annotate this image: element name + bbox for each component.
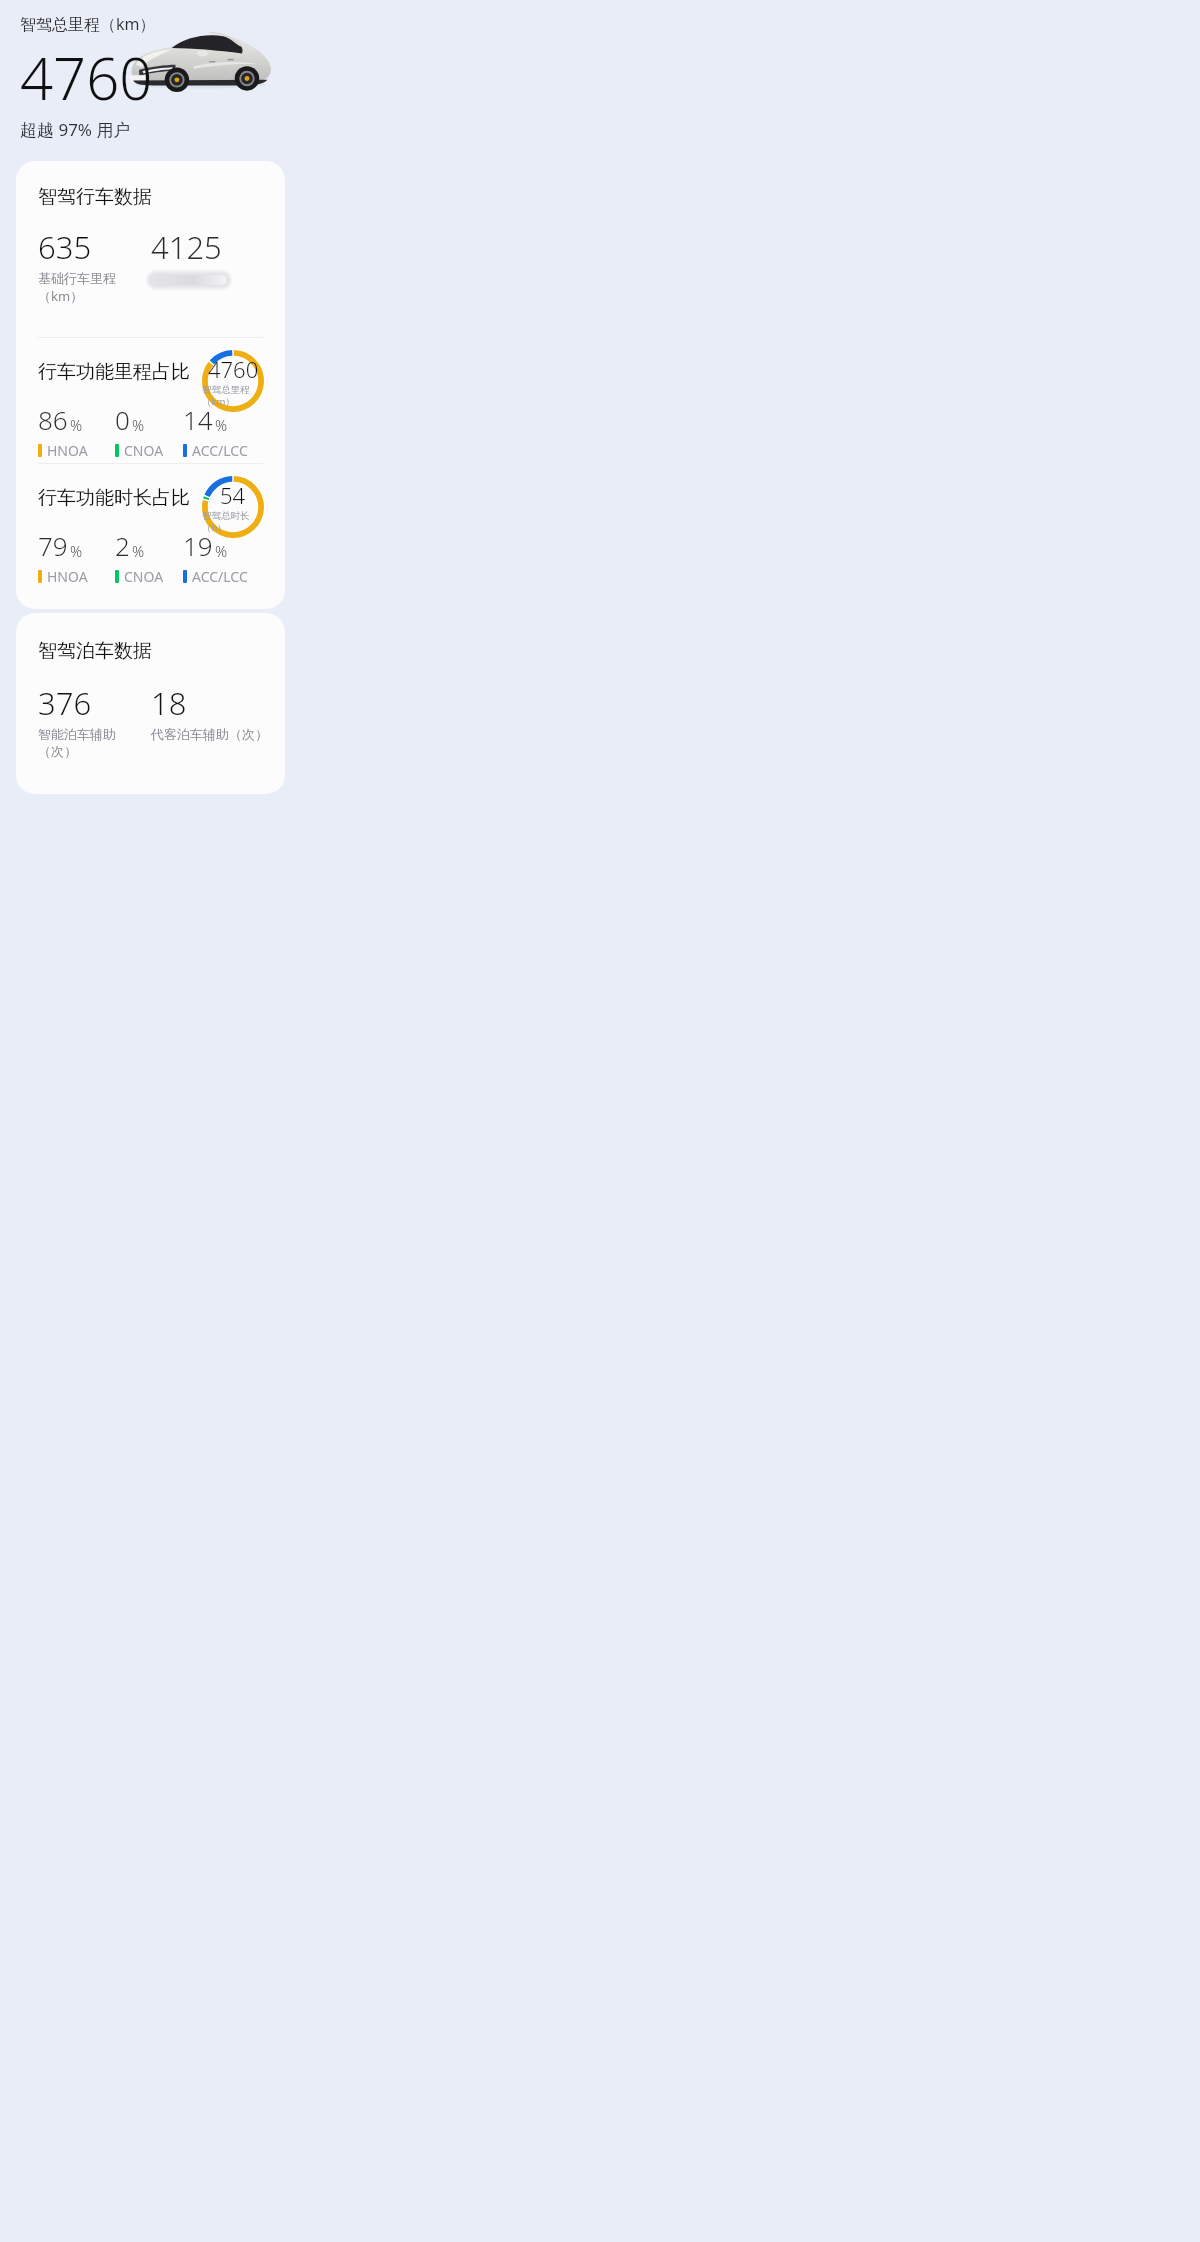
button[interactable]: 智驾泊车数据	[16, 613, 285, 794]
staticText: 智驾总里程（km）	[20, 13, 156, 35]
staticText: 智驾泊车数据	[38, 639, 152, 663]
staticText: 行车功能里程占比	[38, 360, 190, 384]
staticText: 4125	[151, 226, 222, 268]
staticText: 0	[115, 402, 130, 437]
staticText: 635	[38, 226, 92, 268]
staticText: 376	[38, 682, 92, 724]
staticText: 86	[38, 402, 68, 437]
staticText: 54	[220, 480, 246, 510]
staticText: 智驾总时长（h）	[202, 510, 264, 534]
staticText: 代客泊车辅助（次）	[151, 726, 268, 742]
staticText: 4760	[20, 38, 153, 117]
staticText: CNOA	[124, 567, 164, 586]
staticText: %	[215, 541, 228, 561]
staticText: %	[215, 415, 228, 435]
staticText: HNOA	[47, 567, 88, 586]
staticText: 行车功能时长占比	[38, 486, 190, 510]
staticText: %	[132, 541, 145, 561]
button[interactable]: 智驾行车数据	[16, 161, 285, 609]
staticText: 18	[151, 682, 187, 724]
staticText: 智驾总里程（km）	[202, 384, 264, 408]
staticText: ACC/LCC	[192, 441, 248, 460]
staticText: %	[132, 415, 145, 435]
staticText: HNOA	[47, 441, 88, 460]
staticText: 超越 97% 用户	[20, 118, 131, 141]
staticText: ACC/LCC	[192, 567, 248, 586]
staticText: 智能泊车辅助（次）	[38, 726, 151, 760]
staticText: 2	[115, 528, 130, 563]
staticText: 79	[38, 528, 68, 563]
staticText: CNOA	[124, 441, 164, 460]
staticText: %	[70, 415, 83, 435]
staticText: 19	[183, 528, 213, 563]
staticText: 基础行车里程（km）	[38, 270, 151, 305]
staticText: %	[70, 541, 83, 561]
staticText: 14	[183, 402, 213, 437]
staticText: 智驾行车数据	[38, 185, 152, 209]
staticText: 4760	[208, 354, 259, 384]
